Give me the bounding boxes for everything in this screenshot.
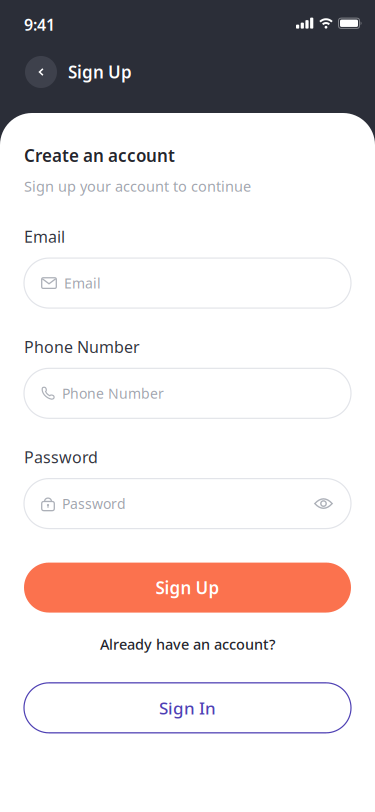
button[interactable]: Show password xyxy=(314,492,333,516)
staticText: Email xyxy=(64,274,101,292)
button[interactable]: Back xyxy=(25,56,57,88)
textField[interactable]: Email xyxy=(24,258,351,308)
staticText: Password xyxy=(62,494,126,513)
secureTextField[interactable]: Password xyxy=(24,479,351,529)
textField[interactable]: Phone Number xyxy=(24,368,351,418)
staticText: Sign Up xyxy=(155,576,219,599)
button[interactable]: Sign Up xyxy=(24,563,351,613)
staticText: Sign In xyxy=(159,696,216,719)
staticText: 9:41 xyxy=(24,14,55,35)
staticText: Sign up your account to continue xyxy=(24,177,251,196)
staticText: Email xyxy=(24,226,65,247)
staticText: Phone Number xyxy=(62,384,164,403)
staticText: Sign Up xyxy=(68,61,132,83)
staticText: Phone Number xyxy=(24,336,140,357)
button[interactable]: Sign In xyxy=(24,683,351,733)
staticText: Password xyxy=(24,446,98,467)
staticText: Already have an account? xyxy=(100,635,275,654)
staticText: Create an account xyxy=(24,144,175,167)
